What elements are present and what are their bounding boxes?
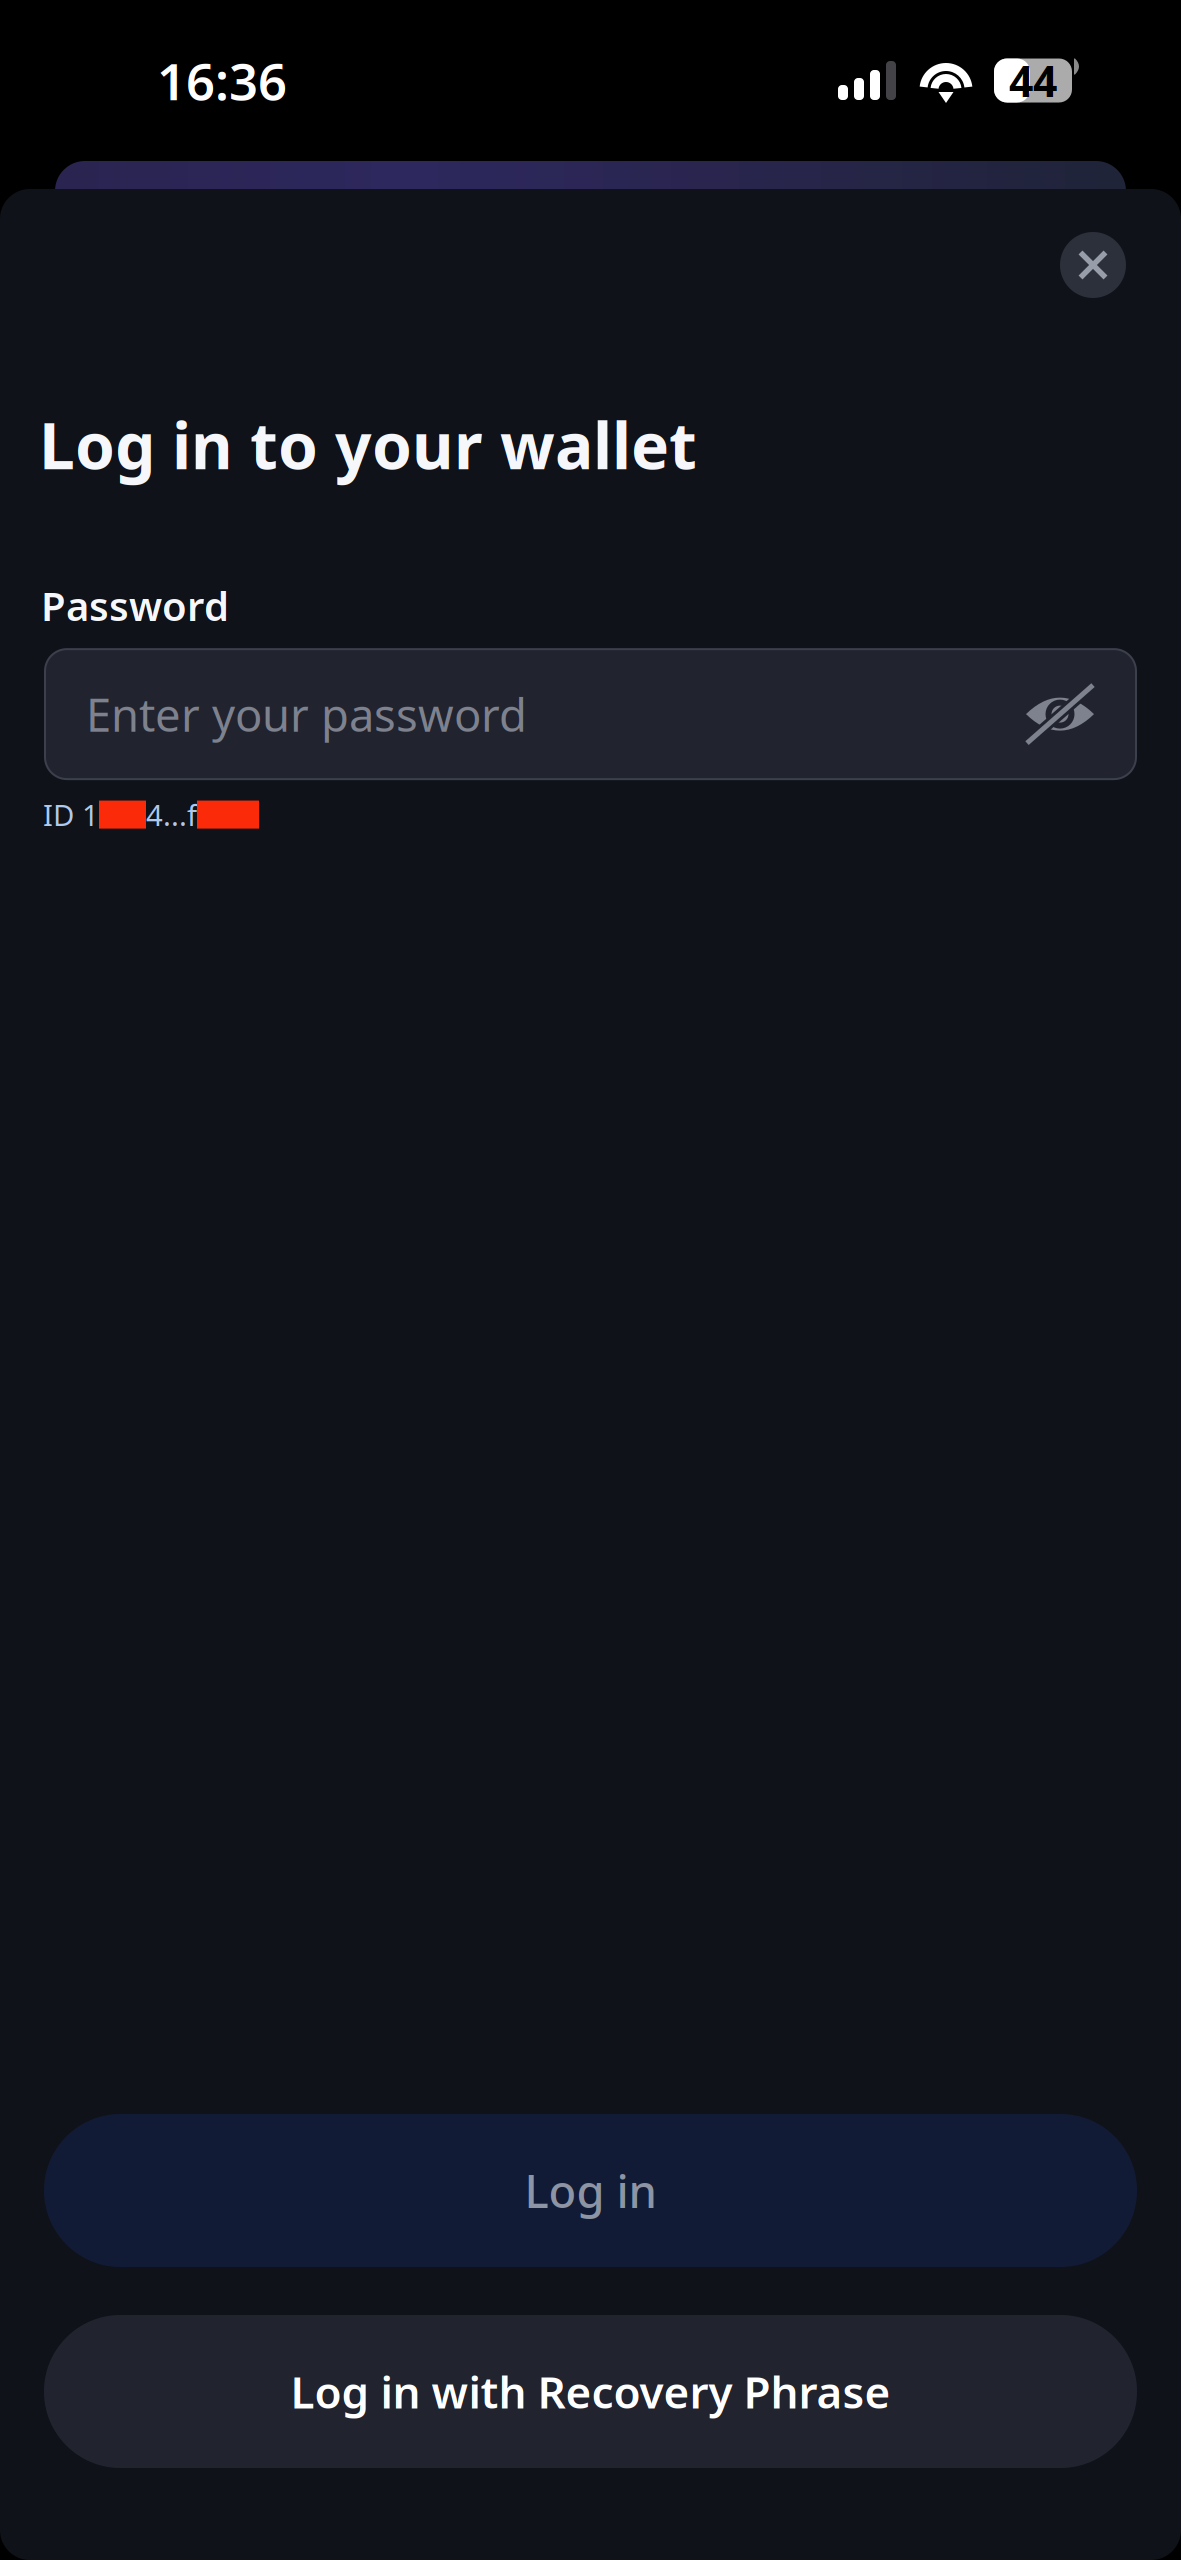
staticText: Log in [524,2160,656,2221]
staticText: Log in to your wallet [39,402,697,487]
staticText: 44 [1009,52,1057,109]
button[interactable]: Close [1060,232,1126,298]
button[interactable]: Log in [44,2114,1137,2267]
button[interactable]: Show password [1024,683,1096,745]
staticText: ID 1 [43,795,99,834]
staticText: Password [41,579,229,632]
staticText: Log in with Recovery Phrase [290,2362,890,2421]
staticText: Enter your password [86,684,527,744]
staticText: 4...f [146,795,197,834]
button[interactable]: Log in with Recovery Phrase [44,2315,1137,2468]
staticText: 16:36 [157,47,287,114]
